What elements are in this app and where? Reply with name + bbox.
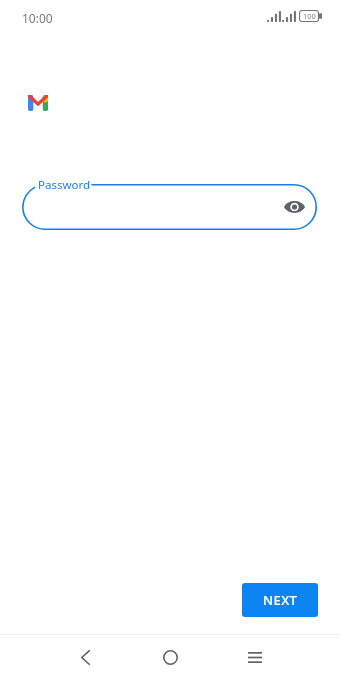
button[interactable]: Home — [155, 642, 185, 672]
staticText: NEXT — [263, 591, 298, 609]
button[interactable]: Show password — [277, 190, 311, 224]
staticText: 10:00 — [22, 10, 53, 26]
staticText: 100 — [303, 11, 316, 21]
button[interactable]: Back — [70, 642, 100, 672]
button[interactable]: NEXT — [242, 583, 318, 617]
staticText: Password — [38, 177, 91, 193]
button[interactable]: Password — [22, 184, 317, 230]
button[interactable]: Recent apps — [240, 642, 270, 672]
